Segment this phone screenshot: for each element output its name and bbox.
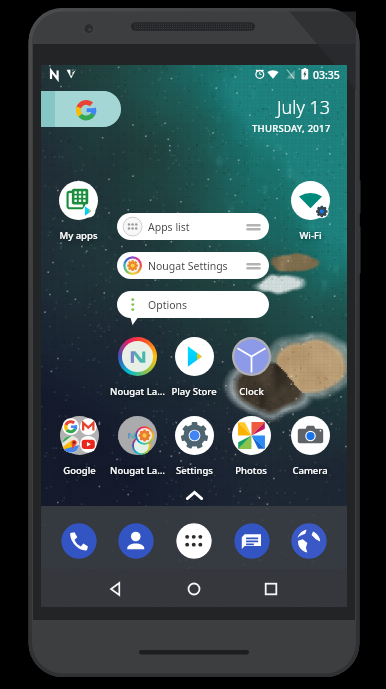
button[interactable]: Wi-Fi bbox=[281, 181, 339, 243]
staticText: Apps list bbox=[148, 220, 190, 234]
staticText: Clock bbox=[239, 385, 264, 398]
button[interactable]: Date bbox=[41, 95, 331, 135]
staticText: Nougat La… bbox=[110, 464, 165, 477]
button[interactable]: Back bbox=[103, 575, 131, 603]
button[interactable]: Photos bbox=[222, 416, 280, 478]
staticText: My apps bbox=[59, 229, 98, 242]
button[interactable]: Clock bbox=[222, 337, 280, 399]
button[interactable]: Home bbox=[180, 575, 208, 603]
staticText: Nougat Settings bbox=[148, 259, 228, 273]
button[interactable]: Google Search bbox=[41, 91, 121, 127]
button[interactable]: My apps bbox=[49, 181, 107, 243]
button[interactable]: Phone bbox=[61, 523, 97, 559]
button[interactable]: Options bbox=[117, 291, 269, 318]
staticText: Camera bbox=[292, 464, 328, 477]
button[interactable]: Messages bbox=[234, 523, 270, 559]
button[interactable]: Apps list bbox=[117, 213, 269, 240]
button[interactable]: Nougat Settings bbox=[117, 252, 269, 279]
staticText: Nougat La… bbox=[110, 385, 165, 398]
button[interactable]: Camera bbox=[281, 416, 339, 478]
button[interactable]: Browser bbox=[291, 523, 327, 559]
staticText: Photos bbox=[235, 464, 267, 477]
staticText: July 13 bbox=[277, 95, 331, 120]
staticText: Options bbox=[148, 298, 188, 312]
staticText: THURSDAY, 2017 bbox=[252, 122, 331, 135]
button[interactable]: Recents bbox=[257, 575, 285, 603]
staticText: Settings bbox=[176, 464, 213, 477]
staticText: Play Store bbox=[171, 385, 217, 398]
button[interactable]: Settings bbox=[165, 416, 223, 478]
staticText: Wi-Fi bbox=[299, 229, 322, 242]
button[interactable]: Nougat La… bbox=[108, 416, 166, 478]
button[interactable]: Play Store bbox=[165, 337, 223, 399]
button[interactable]: Nougat La… bbox=[108, 337, 166, 399]
staticText: Google bbox=[63, 464, 96, 477]
staticText: 03:35 bbox=[313, 68, 340, 82]
button[interactable]: Contacts bbox=[118, 523, 154, 559]
button[interactable]: Google bbox=[50, 416, 108, 478]
button[interactable]: All apps bbox=[176, 523, 212, 559]
